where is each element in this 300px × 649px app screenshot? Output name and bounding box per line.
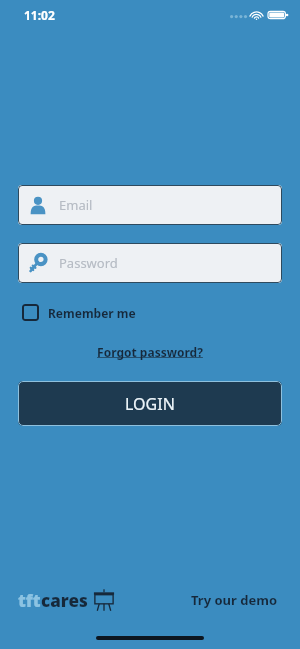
button[interactable]: Email	[18, 185, 282, 225]
button[interactable]: Password	[18, 243, 282, 283]
staticText: tft	[18, 589, 41, 612]
staticText: Remember me	[48, 305, 136, 321]
button[interactable]: Forgot password?	[91, 341, 209, 363]
button[interactable]: Remember me	[20, 301, 138, 324]
staticText: Password	[59, 254, 118, 272]
staticText: 11:02	[24, 7, 55, 23]
staticText: LOGIN	[125, 393, 175, 415]
staticText: cares	[41, 589, 88, 612]
button[interactable]: tft cares logo	[18, 588, 116, 612]
staticText: Email	[59, 196, 93, 214]
button[interactable]: LOGIN	[18, 381, 282, 426]
button[interactable]: Try our demo	[187, 587, 282, 613]
